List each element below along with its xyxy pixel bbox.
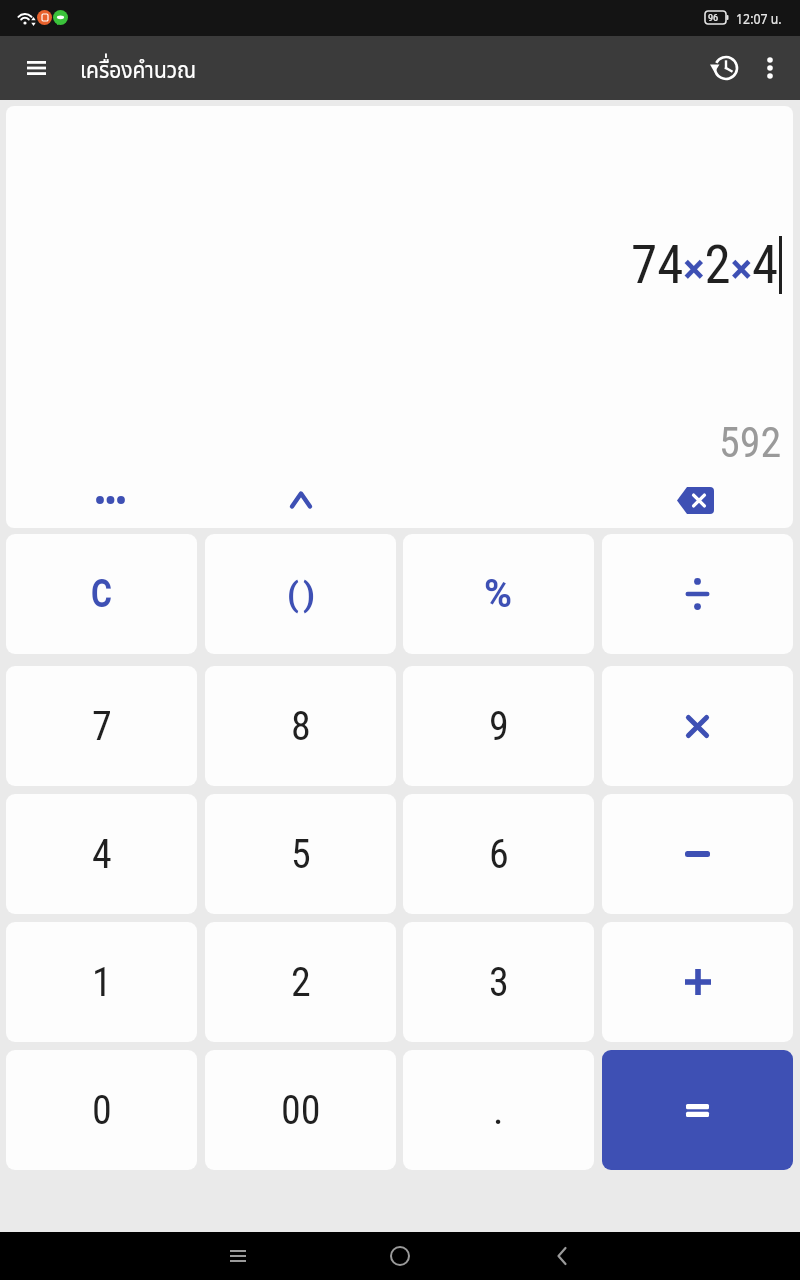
button[interactable] (602, 794, 793, 914)
staticText: ) (303, 574, 315, 614)
button[interactable]: ( (205, 534, 396, 654)
staticText: 2 (291, 959, 311, 1006)
button[interactable] (602, 922, 793, 1042)
staticText: 00 (281, 1087, 321, 1134)
button[interactable]: 0 (6, 1050, 197, 1170)
button[interactable]: 9 (403, 666, 594, 786)
button[interactable]: C (6, 534, 197, 654)
staticText: C (91, 572, 112, 617)
staticText: 0 (92, 1087, 112, 1134)
staticText: 6 (489, 831, 509, 878)
button[interactable] (538, 1232, 586, 1280)
button[interactable] (376, 1232, 424, 1280)
button[interactable]: 5 (205, 794, 396, 914)
button[interactable] (602, 666, 793, 786)
staticText: 9 (489, 703, 509, 750)
button[interactable] (602, 1050, 793, 1170)
staticText: % (484, 572, 513, 617)
staticText: ( (287, 574, 299, 614)
staticText: 74×2×4 (631, 234, 779, 296)
button[interactable] (602, 534, 793, 654)
staticText: 7 (92, 703, 112, 750)
button[interactable] (746, 44, 794, 92)
button[interactable]: 00 (205, 1050, 396, 1170)
button[interactable] (214, 1232, 262, 1280)
button[interactable]: . (403, 1050, 594, 1170)
button[interactable] (666, 477, 726, 523)
button[interactable]: 3 (403, 922, 594, 1042)
button[interactable]: 4 (6, 794, 197, 914)
button[interactable]: 1 (6, 922, 197, 1042)
button[interactable]: 2 (205, 922, 396, 1042)
staticText: 3 (489, 959, 509, 1006)
staticText: 8 (291, 703, 311, 750)
button[interactable]: 6 (403, 794, 594, 914)
staticText: 4 (92, 831, 112, 878)
button[interactable] (273, 478, 329, 522)
button[interactable] (702, 44, 750, 92)
staticText: 5 (291, 831, 311, 878)
staticText: 96 (708, 13, 719, 24)
staticText: . (493, 1087, 504, 1134)
staticText: 12:07 น. (736, 8, 782, 28)
button[interactable]: % (403, 534, 594, 654)
button[interactable]: 8 (205, 666, 396, 786)
staticText: 1 (92, 959, 112, 1006)
button[interactable] (80, 478, 140, 522)
button[interactable] (12, 44, 60, 92)
staticText: เครื่องคำนวณ (80, 51, 197, 85)
button[interactable]: 7 (6, 666, 197, 786)
staticText: 592 (719, 418, 782, 467)
